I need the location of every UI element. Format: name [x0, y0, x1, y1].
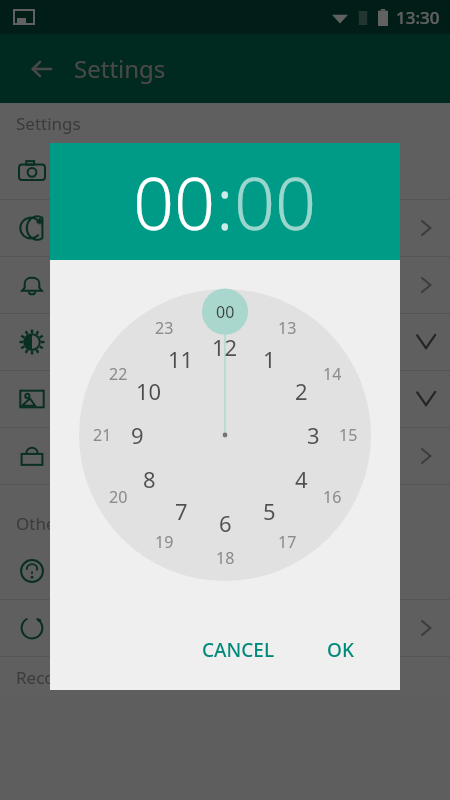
staticText: 16 — [323, 486, 342, 508]
button[interactable]: OK — [313, 627, 368, 673]
staticText: OK — [327, 637, 354, 663]
button[interactable]: About Todait — [0, 600, 450, 656]
button[interactable]: CANCEL — [188, 627, 289, 673]
staticText: 23 — [155, 317, 174, 339]
staticText: 6 — [219, 508, 232, 538]
button[interactable]: 00 — [234, 153, 317, 251]
staticText: Settings — [16, 112, 81, 135]
staticText: 3 — [307, 420, 320, 450]
staticText: 17 — [278, 531, 297, 553]
staticText: 9 — [131, 420, 144, 450]
staticText: 20 — [109, 486, 128, 508]
button[interactable] — [0, 543, 450, 599]
staticText: 00 — [216, 301, 235, 323]
staticText: 12 — [212, 332, 238, 362]
staticText: 13 — [278, 317, 297, 339]
button[interactable]: Back — [18, 45, 66, 93]
staticText: 2 — [295, 376, 308, 406]
staticText: 13:30 — [396, 6, 440, 29]
staticText: 14 — [323, 363, 342, 385]
button[interactable] — [0, 143, 450, 199]
staticText: 11 — [168, 344, 194, 374]
staticText: 1 — [263, 344, 276, 374]
staticText: 00 — [133, 153, 216, 251]
staticText: 18 — [216, 547, 235, 569]
button[interactable]: 00 — [133, 153, 216, 251]
staticText: 7 — [175, 496, 188, 526]
staticText: Other — [16, 512, 63, 535]
button[interactable] — [0, 314, 450, 370]
staticText: 19 — [155, 531, 174, 553]
staticText: 22 — [109, 363, 128, 385]
staticText: 21 — [93, 424, 112, 446]
staticText: Settings — [74, 52, 166, 85]
button[interactable] — [0, 371, 450, 427]
staticText: 8 — [143, 464, 156, 494]
staticText: 15 — [339, 424, 358, 446]
button[interactable] — [0, 200, 450, 256]
staticText: : — [216, 153, 234, 251]
button[interactable] — [0, 257, 450, 313]
staticText: 10 — [136, 376, 162, 406]
button[interactable] — [0, 428, 450, 484]
staticText: Recommend — [16, 666, 117, 689]
staticText: 00 — [234, 153, 317, 251]
staticText: 5 — [263, 496, 276, 526]
staticText: CANCEL — [202, 637, 275, 663]
staticText: 4 — [295, 464, 308, 494]
